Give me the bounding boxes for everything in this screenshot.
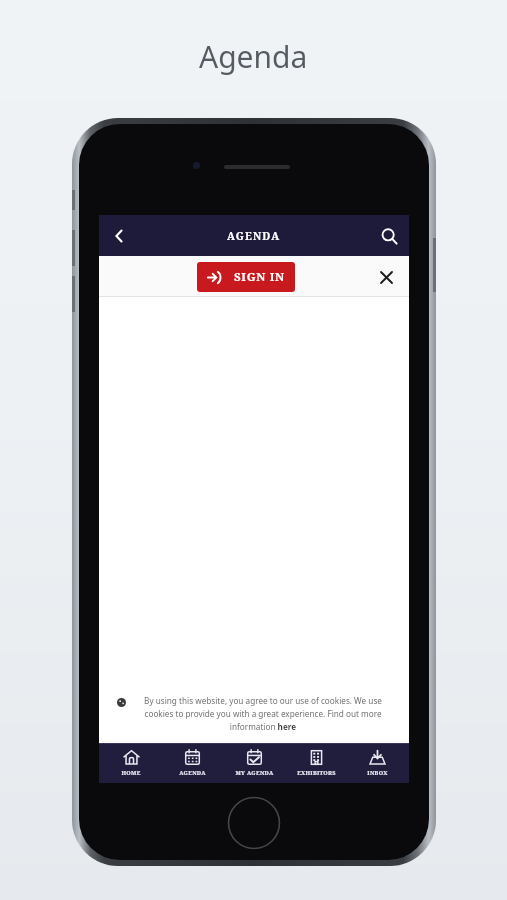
button[interactable]: INBOX: [347, 743, 407, 783]
button[interactable]: SIGN IN: [197, 262, 295, 292]
staticText: INBOX: [367, 769, 388, 777]
button[interactable]: Back: [99, 216, 139, 256]
staticText: MY AGENDA: [235, 769, 274, 777]
staticText: AGENDA: [227, 229, 281, 243]
staticText: AGENDA: [179, 769, 206, 777]
staticText: HOME: [121, 769, 141, 777]
button[interactable]: Close: [373, 264, 399, 290]
staticText: Agenda: [199, 36, 308, 77]
button[interactable]: HOME: [101, 743, 161, 783]
button[interactable]: AGENDA: [162, 743, 222, 783]
button[interactable]: MY AGENDA: [224, 743, 284, 783]
staticText: By using this website, you agree to our …: [131, 695, 395, 733]
staticText: SIGN IN: [234, 269, 285, 285]
button[interactable]: Search: [369, 216, 409, 256]
staticText: EXHIBITORS: [297, 769, 336, 777]
button[interactable]: EXHIBITORS: [286, 743, 346, 783]
button[interactable]: By using this website, you agree to our …: [99, 689, 409, 743]
